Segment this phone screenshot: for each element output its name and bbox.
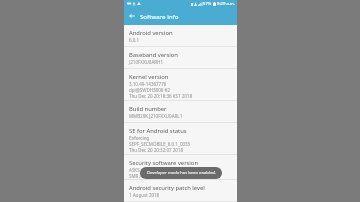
staticText: J210FXXU0ARH1 <box>129 59 164 65</box>
staticText: SEPF_SECMOBILE_6.0.1_0035 <box>129 141 191 147</box>
button[interactable]: Navigate up <box>129 13 135 19</box>
button[interactable]: Baseband version <box>124 47 237 69</box>
staticText: 6.0.1 <box>129 37 140 43</box>
staticText: 9:29 a.m. <box>217 1 235 7</box>
staticText: 3.10.49-14367776 <box>129 81 167 87</box>
staticText: 1 August 2018 <box>129 192 160 198</box>
staticText: Security software version <box>129 159 199 167</box>
button[interactable]: Security software version <box>124 155 237 180</box>
staticText: Thu Dec 20 20:18:36 KST 2018 <box>129 93 192 99</box>
staticText: Kernel version <box>129 73 169 81</box>
staticText: Android version <box>129 29 173 37</box>
staticText: Developer mode has been enabled. <box>147 170 216 176</box>
button[interactable]: Android version <box>124 25 237 47</box>
staticText: Software info <box>140 12 179 20</box>
button[interactable]: Android security patch level <box>124 180 237 202</box>
staticText: MMB29K.J210FXXU0ARL1 <box>129 113 183 119</box>
staticText: Android security patch level <box>129 184 205 192</box>
staticText: Thu Dec 20 20:32:07 2018 <box>129 147 184 153</box>
staticText: SMR Aug-2018 Release 1 <box>129 173 181 179</box>
staticText: 57% <box>203 1 212 7</box>
button[interactable]: Kernel version <box>124 69 237 101</box>
staticText: Enforcing <box>129 135 150 141</box>
staticText: ASKS v1.0_0024 <box>129 167 162 173</box>
button[interactable]: SE for Android status <box>124 123 237 155</box>
button[interactable]: Build number <box>124 101 237 123</box>
staticText: SE for Android status <box>129 127 187 135</box>
staticText: Baseband version <box>129 51 178 59</box>
staticText: Build number <box>129 105 167 113</box>
staticText: dpi@SWDH3806 #2 <box>129 87 170 93</box>
